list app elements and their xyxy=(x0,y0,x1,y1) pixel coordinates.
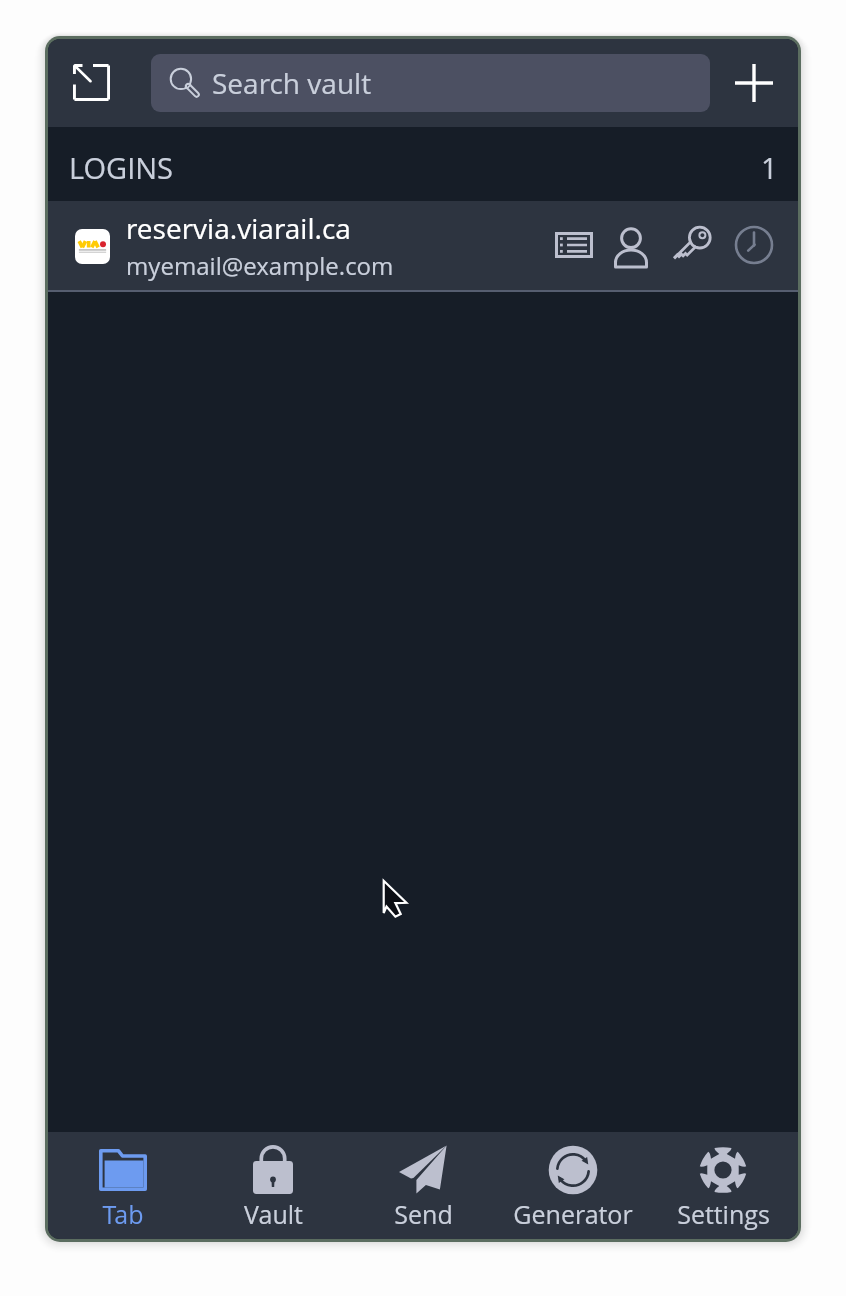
button[interactable]: Copy card number xyxy=(550,221,598,269)
button[interactable]: Copy username xyxy=(607,221,655,269)
button[interactable]: Copy password xyxy=(669,221,717,269)
button[interactable]: Add item xyxy=(724,54,783,112)
staticText: Tab xyxy=(102,1197,144,1231)
button[interactable]: Settings xyxy=(648,1132,798,1239)
staticText: Send xyxy=(394,1197,453,1231)
button[interactable]: Vault xyxy=(198,1132,348,1239)
button[interactable]: Send xyxy=(348,1132,498,1239)
staticText: Settings xyxy=(677,1197,770,1231)
button[interactable]: Open in new window xyxy=(63,54,121,112)
staticText: 1 xyxy=(761,148,778,187)
staticText: Vault xyxy=(244,1197,303,1231)
staticText: Search vault xyxy=(212,64,372,102)
button[interactable]: Generator xyxy=(498,1132,648,1239)
staticText: myemail@example.com xyxy=(126,249,394,282)
button[interactable]: reservia.viarail.ca xyxy=(48,201,798,290)
staticText: Generator xyxy=(513,1197,633,1231)
button[interactable]: Copy verification code xyxy=(730,221,778,269)
button[interactable]: Tab xyxy=(48,1132,198,1239)
staticText: LOGINS xyxy=(69,148,174,187)
button[interactable]: Search vault xyxy=(151,54,710,112)
staticText: reservia.viarail.ca xyxy=(126,209,351,247)
